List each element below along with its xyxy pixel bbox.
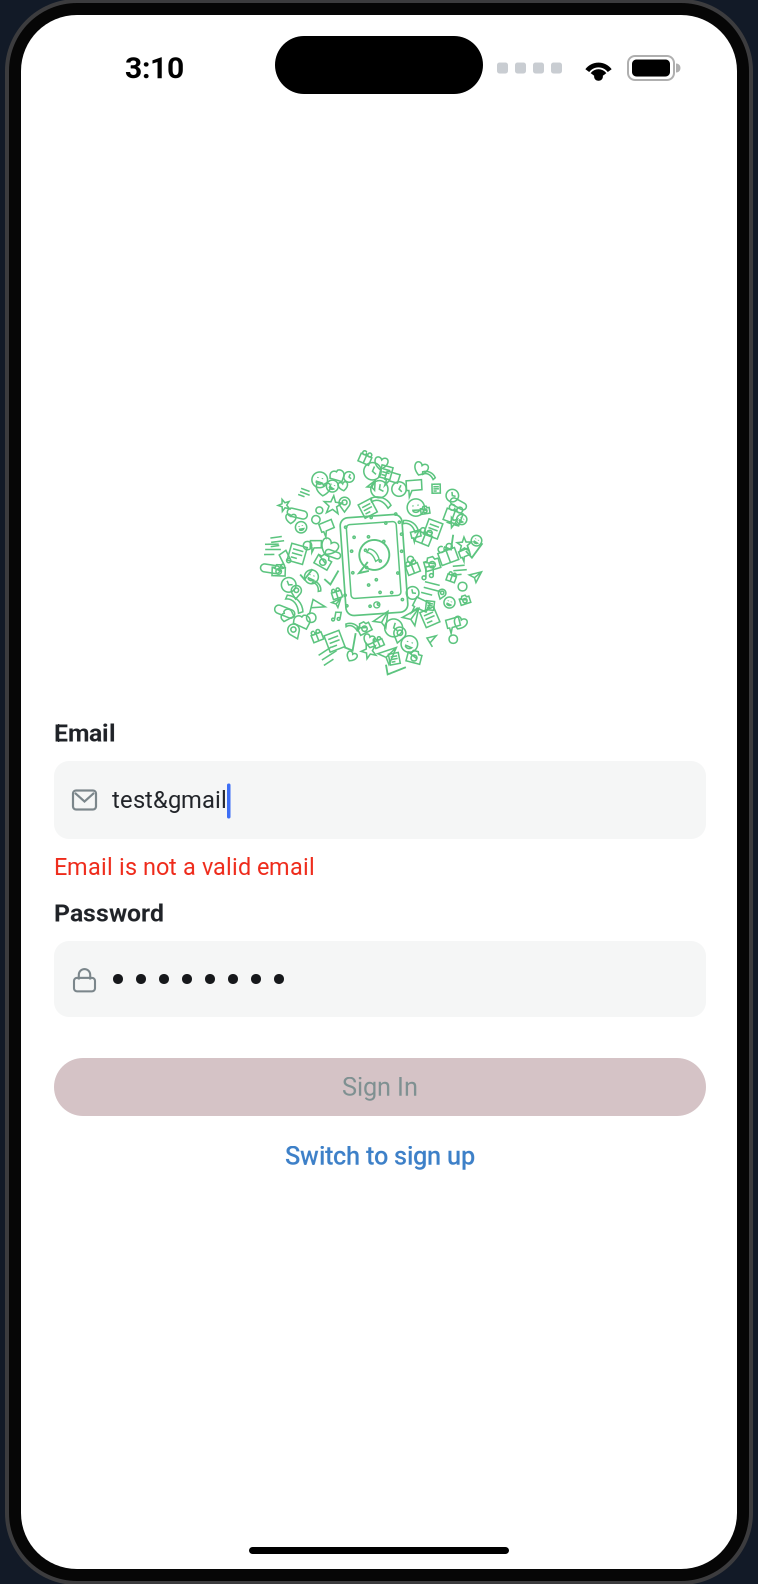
button[interactable]: Switch to sign up <box>54 1137 706 1175</box>
staticText: test&gmail <box>112 786 227 814</box>
button[interactable] <box>54 941 706 1017</box>
button[interactable]: Sign In <box>54 1058 706 1116</box>
staticText: 3:10 <box>125 50 184 86</box>
button[interactable]: test&gmail <box>54 761 706 839</box>
staticText: Sign In <box>342 1072 418 1102</box>
staticText: Password <box>54 898 164 928</box>
staticText: Email is not a valid email <box>54 853 315 881</box>
staticText: Email <box>54 718 116 748</box>
staticText: Switch to sign up <box>285 1141 475 1171</box>
